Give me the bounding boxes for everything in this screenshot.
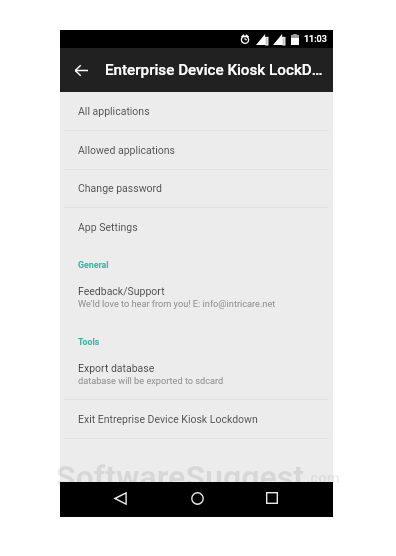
staticText: We'ld love to hear from you! E: info@int… [78,298,276,309]
button[interactable]: Exit Entreprise Device Kiosk Lockdown [60,400,333,438]
button[interactable]: Export database [60,362,333,388]
staticText: Exit Entreprise Device Kiosk Lockdown [78,413,258,425]
button[interactable]: App Settings [60,208,333,246]
staticText: App Settings [78,221,138,233]
button[interactable]: Home [183,484,211,512]
button[interactable]: Allowed applications [60,131,333,169]
button[interactable]: Recent apps [258,484,286,512]
staticText: database will be exported to sdcard [78,375,224,386]
staticText: 11:03 [304,34,327,45]
staticText: Tools [78,337,100,347]
staticText: General [78,260,109,270]
staticText: Allowed applications [78,144,175,156]
staticText: .com [306,469,340,487]
button[interactable]: Change password [60,170,333,207]
staticText: Enterprise Device Kiosk LockDown [105,61,324,79]
staticText: Change password [78,182,162,194]
button[interactable]: Back [106,484,134,512]
staticText: Feedback/Support [78,285,165,297]
button[interactable]: Navigate up [66,55,96,85]
staticText: SoftwareSuggest [56,458,305,496]
staticText: Export database [78,362,155,374]
button[interactable]: All applications [60,92,333,130]
staticText: All applications [78,105,150,117]
button[interactable]: Feedback/Support [60,285,333,311]
